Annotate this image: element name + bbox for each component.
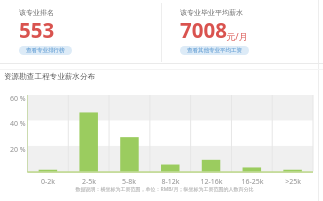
staticText: 5-8k xyxy=(122,177,136,187)
staticText: 数据说明：横坐标为工资范围，单位：RMB/月；纵坐标为工资范围的人数百分比 xyxy=(3,186,323,193)
staticText: 元/月 xyxy=(224,30,248,42)
staticText: 16-25k xyxy=(241,177,264,187)
staticText: 40 % xyxy=(10,119,26,129)
staticText: 12-16k xyxy=(200,177,223,187)
staticText: 7008 xyxy=(180,16,227,44)
staticText: 查看专业排行榜 xyxy=(26,47,65,54)
staticText: 8-12k xyxy=(161,177,180,187)
button[interactable]: 查看其他专业平均工资 xyxy=(180,46,249,55)
staticText: 该专业毕业平均薪水 xyxy=(180,8,243,17)
staticText: >25k xyxy=(285,177,301,187)
staticText: 查看其他专业平均工资 xyxy=(187,47,242,54)
staticText: 2-5k xyxy=(82,177,96,187)
staticText: 20 % xyxy=(10,145,26,155)
staticText: 资源勘查工程专业薪水分布 xyxy=(4,72,96,82)
staticText: 该专业排名 xyxy=(19,8,54,17)
staticText: 60 % xyxy=(10,94,26,104)
staticText: 0-2k xyxy=(41,177,55,187)
button[interactable]: 查看专业排行榜 xyxy=(19,46,72,55)
staticText: 553 xyxy=(19,16,55,44)
